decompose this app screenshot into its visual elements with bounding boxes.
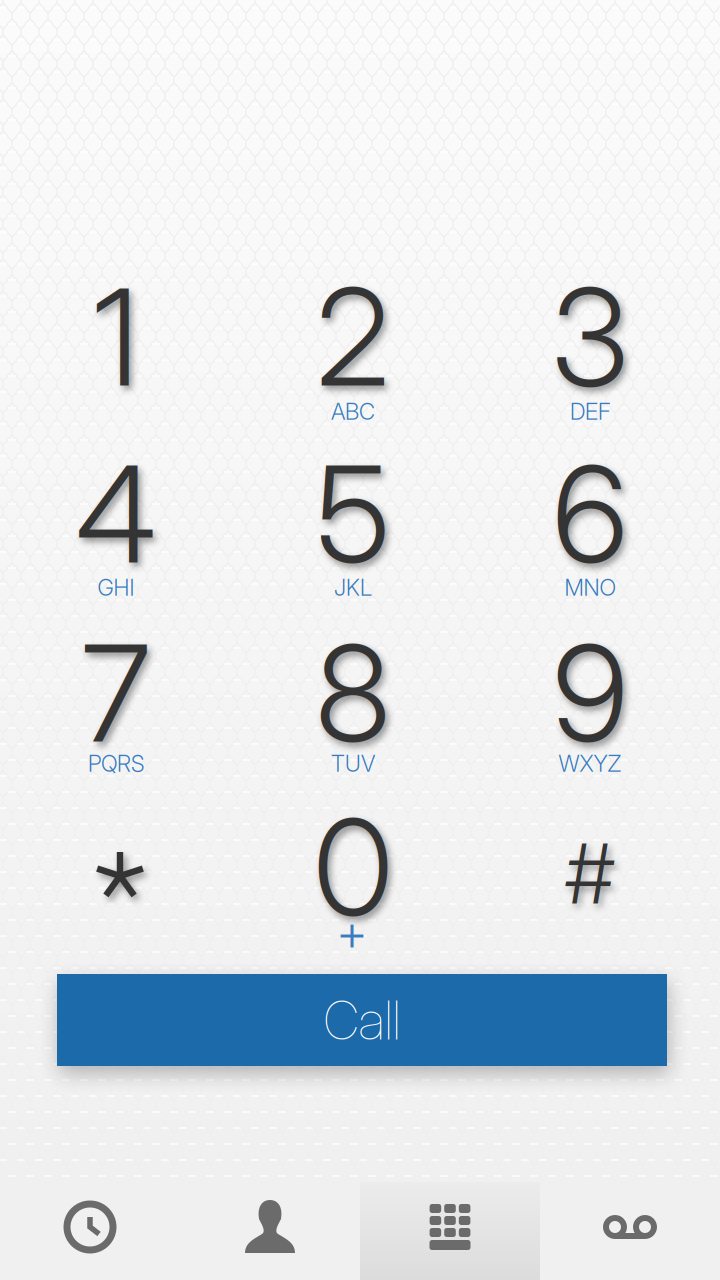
button[interactable]: 4 xyxy=(0,0,720,1280)
button[interactable]: 2 xyxy=(0,0,720,1280)
staticText: + xyxy=(336,901,367,963)
button[interactable]: Contacts xyxy=(180,1182,360,1280)
staticText: TUV xyxy=(331,750,375,777)
staticText: PQRS xyxy=(88,750,144,777)
button[interactable]: Keypad xyxy=(360,1182,540,1280)
staticText: JKL xyxy=(334,574,372,601)
staticText: Call xyxy=(323,988,400,1052)
button[interactable]: # xyxy=(0,0,720,1280)
staticText: DEF xyxy=(570,398,610,425)
staticText: # xyxy=(565,823,614,923)
staticText: 9 xyxy=(552,612,627,774)
staticText: ABC xyxy=(331,398,375,425)
staticText: 6 xyxy=(552,433,627,595)
button[interactable]: 9 xyxy=(0,0,720,1280)
button[interactable]: Voicemail xyxy=(540,1182,720,1280)
staticText: 3 xyxy=(551,256,628,418)
button[interactable]: Star xyxy=(0,0,720,1280)
button[interactable]: Recents xyxy=(0,1182,180,1280)
staticText: MNO xyxy=(564,574,615,601)
button[interactable]: 5 xyxy=(0,0,720,1280)
button[interactable]: 1 xyxy=(0,0,720,1280)
staticText: WXYZ xyxy=(558,750,621,777)
button[interactable]: 3 xyxy=(0,0,720,1280)
staticText: GHI xyxy=(97,574,134,601)
staticText: 7 xyxy=(81,612,150,774)
staticText: 5 xyxy=(316,433,390,595)
staticText: 0 xyxy=(313,786,392,948)
button[interactable]: 6 xyxy=(0,0,720,1280)
button[interactable]: 0 xyxy=(0,0,720,1280)
button[interactable]: 7 xyxy=(0,0,720,1280)
staticText: 8 xyxy=(315,612,390,774)
button[interactable]: Call xyxy=(57,974,667,1066)
staticText: 2 xyxy=(316,256,390,418)
staticText: 1 xyxy=(93,256,139,418)
button[interactable]: 8 xyxy=(0,0,720,1280)
staticText: 4 xyxy=(75,433,156,595)
